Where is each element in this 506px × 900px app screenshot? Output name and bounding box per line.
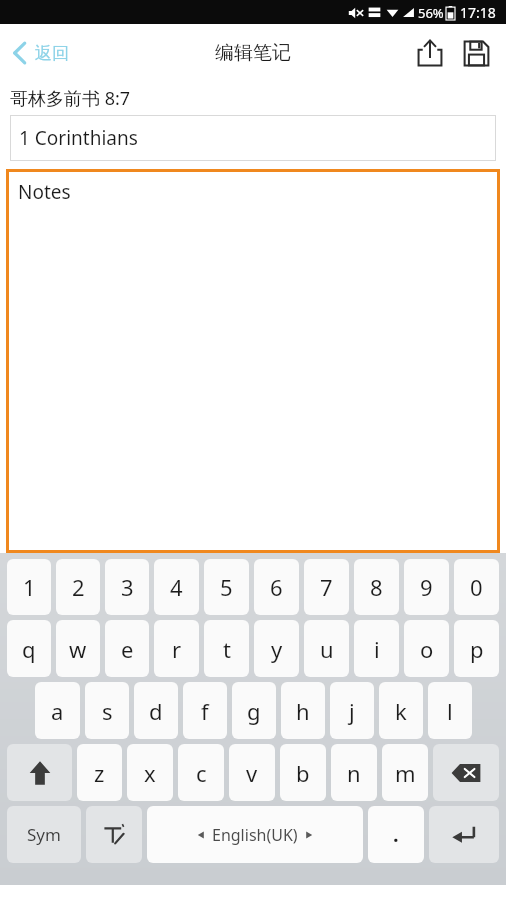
button[interactable]: w [56, 620, 100, 677]
button[interactable]: i [354, 620, 399, 677]
button[interactable]: k [379, 682, 423, 739]
button[interactable]: a [35, 682, 80, 739]
button[interactable]: Backspace [433, 744, 499, 801]
button[interactable]: j [330, 682, 374, 739]
button[interactable]: v [229, 744, 275, 801]
staticText: 1 [23, 572, 36, 602]
staticText: 7 [320, 572, 333, 602]
staticText: y [271, 634, 283, 664]
button[interactable]: x [127, 744, 173, 801]
staticText: 5 [220, 572, 233, 602]
staticText: b [296, 758, 310, 788]
button[interactable]: s [85, 682, 129, 739]
button[interactable]: t [204, 620, 249, 677]
button[interactable]: m [382, 744, 428, 801]
button[interactable]: Handwriting input [86, 806, 142, 863]
staticText: 哥林多前书 8:7 [10, 86, 131, 111]
button[interactable]: c [178, 744, 224, 801]
button[interactable]: p [454, 620, 499, 677]
staticText: 9 [420, 572, 433, 602]
staticText: i [374, 634, 380, 664]
button[interactable]: e [105, 620, 149, 677]
button[interactable]: g [232, 682, 276, 739]
staticText: a [51, 696, 64, 726]
button[interactable]: 返回 [0, 34, 81, 72]
staticText: r [172, 634, 182, 664]
staticText: 2 [72, 572, 85, 602]
button[interactable]: 6 [254, 559, 299, 615]
staticText: w [69, 634, 87, 664]
button[interactable]: 3 [105, 559, 149, 615]
staticText: k [395, 696, 407, 726]
button[interactable]: Notes [6, 169, 500, 553]
button[interactable]: 1 Corinthians [10, 115, 496, 161]
staticText: 6 [270, 572, 283, 602]
button[interactable]: 4 [154, 559, 199, 615]
staticText: e [121, 634, 134, 664]
button[interactable]: 7 [304, 559, 349, 615]
staticText: o [420, 634, 434, 664]
button[interactable]: d [134, 682, 178, 739]
button[interactable]: 9 [404, 559, 449, 615]
button[interactable]: h [281, 682, 325, 739]
button[interactable]: o [404, 620, 449, 677]
button[interactable]: l [428, 682, 472, 739]
button[interactable]: Sym [7, 806, 81, 863]
button[interactable]: 2 [56, 559, 100, 615]
button[interactable]: Shift [7, 744, 72, 801]
staticText: f [201, 696, 209, 726]
button[interactable]: Share [408, 31, 452, 75]
staticText: 8 [370, 572, 383, 602]
button[interactable]: 1 [7, 559, 51, 615]
staticText: 3 [121, 572, 134, 602]
staticText: Notes [18, 179, 71, 205]
staticText: 编辑笔记 [215, 41, 291, 65]
button[interactable]: q [7, 620, 51, 677]
button[interactable]: 0 [454, 559, 499, 615]
button[interactable]: English(UK) [147, 806, 363, 863]
button[interactable]: Save [454, 31, 498, 75]
button[interactable]: u [304, 620, 349, 677]
staticText: 0 [470, 572, 483, 602]
staticText: d [149, 696, 163, 726]
button[interactable]: n [331, 744, 377, 801]
button[interactable]: b [280, 744, 326, 801]
staticText: . [393, 821, 399, 848]
staticText: q [22, 634, 36, 664]
staticText: x [144, 758, 156, 788]
button[interactable]: . [368, 806, 424, 863]
button[interactable]: f [183, 682, 227, 739]
staticText: t [223, 634, 231, 664]
staticText: 返回 [35, 43, 69, 64]
staticText: u [320, 634, 334, 664]
button[interactable]: r [154, 620, 199, 677]
button[interactable]: 5 [204, 559, 249, 615]
staticText: 4 [170, 572, 183, 602]
button[interactable]: z [77, 744, 122, 801]
staticText: z [94, 758, 105, 788]
staticText: 17:18 [460, 3, 496, 22]
staticText: g [247, 696, 261, 726]
staticText: l [447, 696, 453, 726]
staticText: p [470, 634, 484, 664]
staticText: 1 Corinthians [19, 125, 138, 151]
staticText: j [349, 696, 355, 726]
staticText: s [102, 696, 113, 726]
staticText: n [347, 758, 361, 788]
staticText: English(UK) [212, 824, 298, 846]
staticText: Sym [27, 823, 61, 846]
staticText: c [196, 758, 207, 788]
staticText: m [395, 758, 416, 788]
button[interactable]: 8 [354, 559, 399, 615]
button[interactable]: y [254, 620, 299, 677]
staticText: 56% [418, 4, 444, 22]
staticText: h [296, 696, 310, 726]
button[interactable]: Enter [429, 806, 499, 863]
staticText: v [246, 758, 258, 788]
